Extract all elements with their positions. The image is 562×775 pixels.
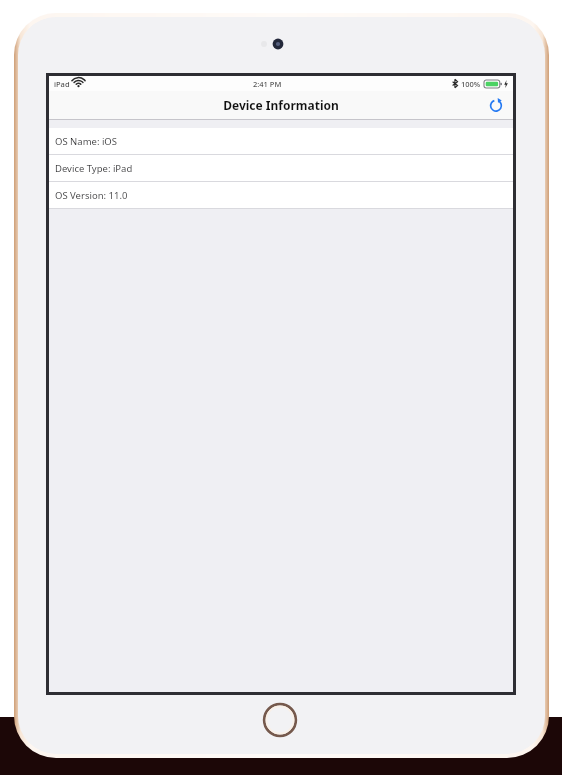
staticText: OS Version: 11.0 <box>55 189 128 202</box>
staticText: 2:41 PM <box>253 79 282 89</box>
staticText: Device Type: iPad <box>55 162 133 175</box>
staticText: Device Information <box>223 97 339 113</box>
button[interactable]: Refresh <box>484 93 508 117</box>
staticText: OS Name: iOS <box>55 135 117 148</box>
button[interactable]: OS Version: 11.0 <box>49 182 513 208</box>
staticText: iPad <box>54 79 70 89</box>
button[interactable]: OS Name: iOS <box>49 128 513 154</box>
button[interactable]: Device Type: iPad <box>49 155 513 181</box>
staticText: 100% <box>461 79 481 89</box>
